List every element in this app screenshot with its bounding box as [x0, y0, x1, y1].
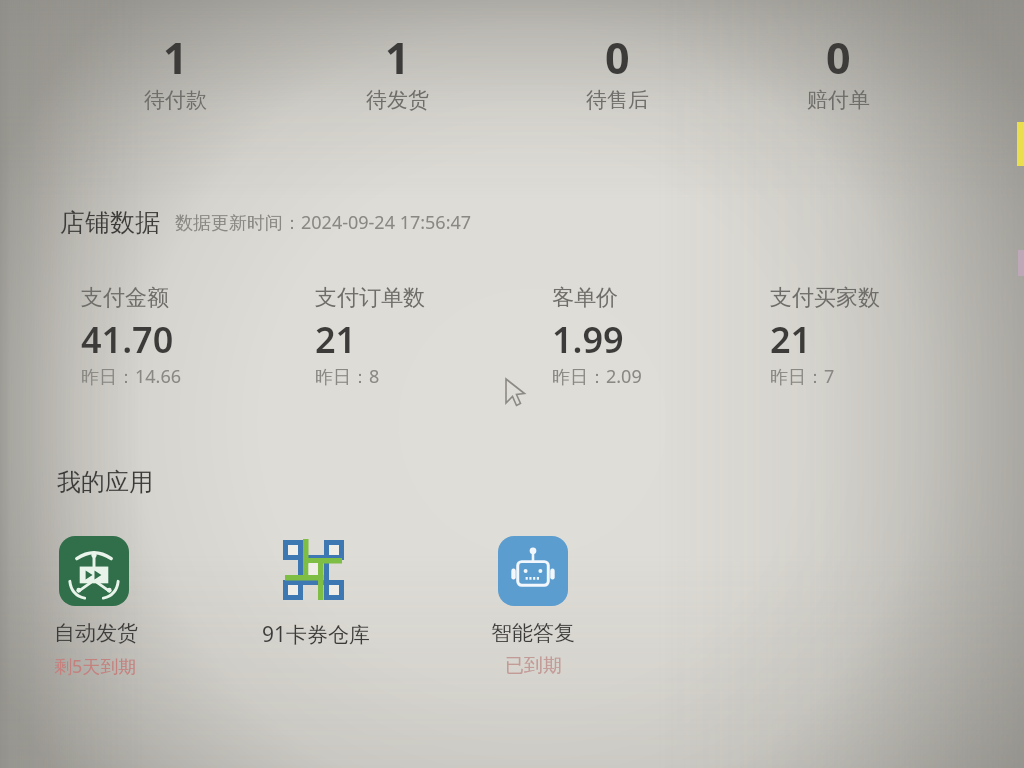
staticText: 0 — [605, 28, 630, 87]
button[interactable]: 支付买家数 — [770, 284, 970, 389]
button[interactable]: 智能答复 — [489, 536, 577, 678]
staticText: 1 — [163, 28, 188, 87]
staticText: 剩5天到期 — [54, 654, 137, 679]
button[interactable]: 0 — [547, 28, 687, 123]
button[interactable]: 支付金额 — [81, 284, 281, 389]
staticText: 待售后 — [586, 87, 649, 113]
other: 91卡券仓库 — [281, 536, 351, 606]
staticText: 自动发货 — [54, 620, 138, 646]
staticText: 昨日：7 — [770, 364, 835, 389]
staticText: 21 — [770, 315, 812, 364]
staticText: 昨日：2.09 — [552, 364, 642, 389]
staticText: 数据更新时间：2024-09-24 17:56:47 — [175, 210, 472, 235]
staticText: 待发货 — [366, 87, 429, 113]
staticText: 41.70 — [81, 315, 174, 364]
button[interactable]: 支付订单数 — [315, 284, 515, 389]
button[interactable]: 自动发货 — [54, 536, 144, 679]
staticText: 0 — [826, 28, 851, 87]
staticText: 支付金额 — [81, 284, 169, 312]
staticText: 赔付单 — [807, 87, 870, 113]
staticText: 91卡券仓库 — [262, 620, 371, 649]
staticText: 支付买家数 — [770, 284, 880, 312]
other: 自动发货 — [59, 536, 129, 606]
button[interactable]: 0 — [768, 28, 908, 123]
button[interactable]: 91卡券仓库 — [260, 536, 372, 649]
staticText: 已到期 — [505, 654, 562, 678]
button[interactable]: 1 — [327, 28, 467, 123]
other: 智能答复 — [498, 536, 568, 606]
staticText: 我的应用 — [57, 467, 153, 497]
staticText: 1.99 — [552, 315, 624, 364]
staticText: 21 — [315, 315, 357, 364]
staticText: 智能答复 — [491, 620, 575, 646]
staticText: 昨日：14.66 — [81, 364, 182, 389]
staticText: 客单价 — [552, 284, 618, 312]
button[interactable]: 1 — [105, 28, 245, 123]
staticText: 支付订单数 — [315, 284, 425, 312]
staticText: 昨日：8 — [315, 364, 380, 389]
button[interactable]: 客单价 — [552, 284, 752, 389]
staticText: 店铺数据 — [60, 207, 160, 238]
staticText: 1 — [385, 28, 410, 87]
staticText: 待付款 — [144, 87, 207, 113]
